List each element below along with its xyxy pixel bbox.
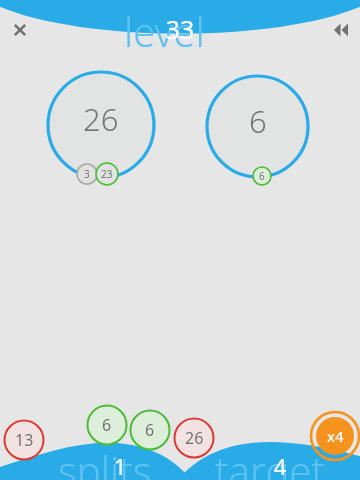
button[interactable]: 6 xyxy=(86,404,128,446)
staticText: level xyxy=(124,4,205,58)
staticText: 1 xyxy=(95,451,145,479)
staticText: 26 xyxy=(83,98,119,140)
staticText: 3 xyxy=(84,167,90,181)
staticText: 6 xyxy=(249,100,267,142)
button[interactable]: 6 xyxy=(205,74,310,179)
button[interactable]: 26 xyxy=(173,417,215,459)
staticText: 13 xyxy=(15,429,34,451)
staticText: 6 xyxy=(145,419,155,441)
button[interactable]: 3 xyxy=(76,163,98,185)
staticText: target xyxy=(215,443,326,480)
button[interactable]: 26 xyxy=(46,70,156,180)
staticText: splits xyxy=(58,443,152,480)
button[interactable]: 6 xyxy=(252,166,272,186)
button[interactable]: Rewind xyxy=(328,16,356,44)
button[interactable]: x4 xyxy=(310,411,360,461)
button[interactable]: 23 xyxy=(95,162,119,186)
staticText: 6 xyxy=(259,169,265,183)
staticText: x4 xyxy=(327,426,344,446)
staticText: 26 xyxy=(185,427,204,449)
staticText: 33 xyxy=(0,12,360,44)
button[interactable]: 6 xyxy=(129,409,171,451)
staticText: 6 xyxy=(102,414,112,436)
staticText: 4 xyxy=(255,451,305,479)
button[interactable]: Close xyxy=(6,16,34,44)
staticText: 23 xyxy=(101,167,113,181)
button[interactable]: 13 xyxy=(3,419,45,461)
